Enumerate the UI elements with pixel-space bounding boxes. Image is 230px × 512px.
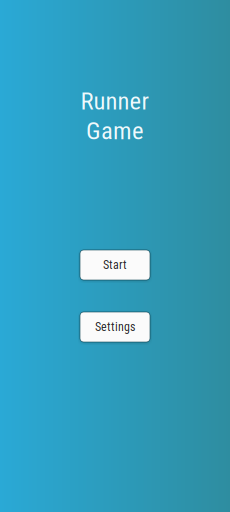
staticText: Game xyxy=(86,116,144,145)
button[interactable]: Start xyxy=(80,250,150,280)
button[interactable]: Settings xyxy=(80,312,150,342)
staticText: Start xyxy=(103,258,127,272)
staticText: Runner xyxy=(80,86,149,115)
staticText: Settings xyxy=(95,320,135,334)
